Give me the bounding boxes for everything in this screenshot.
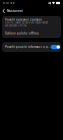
button[interactable]: Sdílení polohy offline xyxy=(2,29,61,38)
staticText: 9:41 xyxy=(3,1,9,5)
staticText: Zvolte, jakým způsobem chcete nalézt xyxy=(5,21,48,24)
staticText: své zařízení offline. xyxy=(5,24,27,27)
staticText: Povolit nalezení zařízení xyxy=(5,18,42,21)
button[interactable]: Povolit použití informací o poloze xyxy=(2,42,61,52)
staticText: Povolit použití informací o poloze xyxy=(5,45,50,49)
staticText: Nastavení xyxy=(7,9,23,13)
button[interactable]: Povolit nalezení zařízení xyxy=(2,16,61,29)
button[interactable]: Zpět xyxy=(1,6,7,16)
staticText: Sdílení polohy offline xyxy=(5,32,39,35)
